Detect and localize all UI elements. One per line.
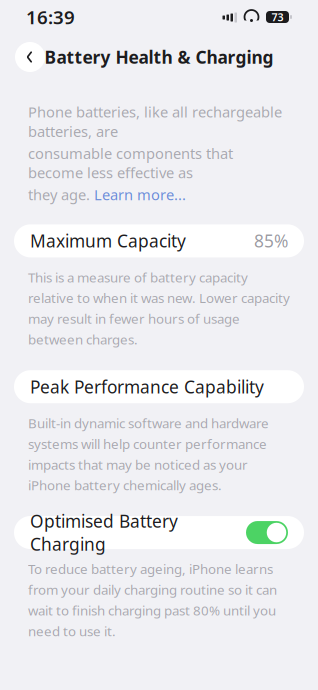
staticText: 85% [254,229,288,252]
staticText: 73 [271,10,283,24]
staticText: This is a measure of battery capacity re… [28,268,290,348]
button[interactable]: Back [15,42,45,72]
staticText: To reduce battery ageing, iPhone learns … [28,560,277,640]
staticText: they age. [28,185,94,204]
button[interactable]: Learn more... [94,185,186,204]
staticText: consumable components that become less e… [28,143,233,182]
button[interactable]: Peak Performance Capability [14,370,304,403]
staticText: Phone batteries, like all rechargeable b… [28,102,282,141]
button[interactable]: Optimised Battery Charging [14,516,304,549]
staticText: Maximum Capacity [30,229,186,252]
button[interactable]: Optimised Battery Charging toggle, on [246,521,288,544]
staticText: Battery Health & Charging [44,45,273,68]
staticText: Optimised Battery Charging [30,509,178,555]
staticText: Built-in dynamic software and hardware s… [28,414,269,494]
staticText: Learn more... [94,185,186,204]
staticText: Peak Performance Capability [30,375,264,398]
staticText: 16:39 [26,5,75,29]
button[interactable]: Maximum Capacity [14,224,304,257]
